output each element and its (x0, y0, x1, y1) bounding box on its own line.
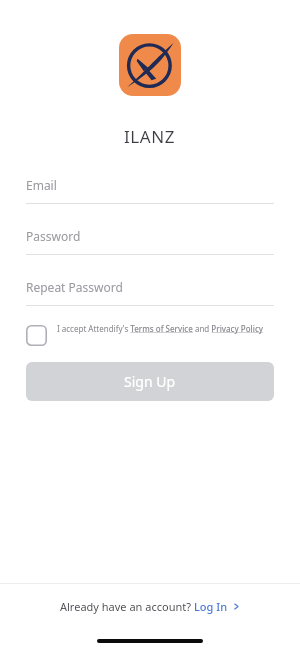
staticText: Sign Up (124, 372, 176, 391)
staticText: I accept Attendify's Terms of Service an… (57, 323, 264, 334)
staticText: Already have an account? (60, 599, 194, 614)
button[interactable]: Repeat Password (26, 275, 274, 306)
other: Accept terms checkbox (26, 325, 47, 346)
staticText: Log In (194, 599, 228, 614)
staticText: Email (26, 177, 57, 193)
button[interactable]: Email (26, 173, 274, 204)
button[interactable]: Accept terms checkbox (26, 323, 274, 346)
button[interactable]: Sign Up (26, 362, 274, 401)
staticText: Password (26, 228, 81, 244)
button[interactable]: Password (26, 224, 274, 255)
staticText: ILANZ (124, 125, 176, 148)
staticText: Repeat Password (26, 279, 123, 295)
button[interactable]: Already have an account? (0, 584, 300, 628)
